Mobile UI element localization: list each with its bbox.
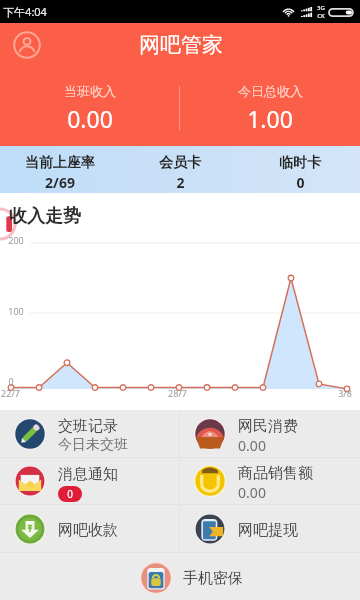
staticText: 当前上座率: [25, 154, 95, 172]
staticText: 0.00: [238, 483, 266, 502]
staticText: 收入走势: [9, 205, 81, 228]
button[interactable]: 临时卡: [240, 146, 360, 193]
staticText: 当班收入: [64, 83, 116, 99]
button[interactable]: 交班记录: [0, 410, 179, 457]
button[interactable]: 网吧提现: [180, 505, 360, 552]
staticText: 100: [8, 305, 24, 317]
staticText: 今日总收入: [238, 83, 303, 99]
staticText: 22/7: [1, 387, 20, 399]
staticText: 网吧收款: [58, 521, 118, 540]
staticText: 0.00: [67, 103, 113, 134]
staticText: 0.00: [238, 436, 266, 455]
staticText: 网民消费: [238, 417, 298, 436]
staticText: 2: [176, 173, 185, 192]
staticText: 临时卡: [279, 154, 321, 172]
button[interactable]: 当前上座率: [0, 146, 120, 193]
staticText: 网吧管家: [139, 32, 223, 58]
staticText: 手机密保: [183, 569, 243, 588]
staticText: 0: [8, 375, 14, 387]
staticText: CK: [317, 12, 325, 20]
staticText: 2/69: [45, 173, 75, 192]
button[interactable]: 网吧收款: [0, 505, 179, 552]
staticText: 今日未交班: [58, 436, 128, 454]
staticText: 200: [8, 234, 24, 246]
staticText: 0: [67, 487, 73, 501]
button[interactable]: Profile: [13, 31, 41, 59]
button[interactable]: 手机密保: [0, 553, 360, 600]
staticText: 1.00: [247, 103, 293, 134]
staticText: 28/7: [168, 387, 187, 399]
staticText: 3/8: [338, 387, 352, 399]
staticText: 商品销售额: [238, 464, 313, 483]
staticText: 3G: [317, 4, 325, 12]
staticText: 消息通知: [58, 465, 118, 484]
button[interactable]: 商品销售额: [180, 458, 360, 504]
staticText: 网吧提现: [238, 521, 298, 540]
button[interactable]: 会员卡: [120, 146, 240, 193]
staticText: 交班记录: [58, 417, 118, 436]
button[interactable]: 网民消费: [180, 410, 360, 457]
staticText: 0: [296, 173, 305, 192]
staticText: 会员卡: [159, 154, 201, 172]
button[interactable]: 消息通知: [0, 458, 179, 504]
staticText: 下午4:04: [3, 4, 47, 19]
